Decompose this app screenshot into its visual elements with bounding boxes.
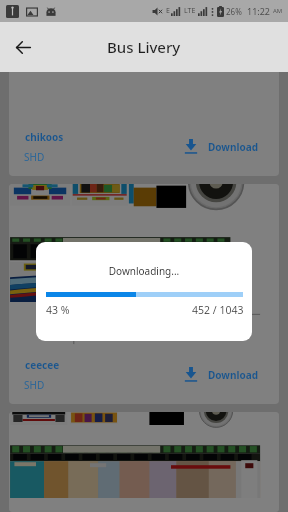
staticText: Downloading... [36, 264, 252, 278]
staticText: chikoos [25, 130, 64, 144]
button[interactable]: Back [0, 24, 46, 70]
staticText: 26% [226, 6, 242, 17]
staticText: 452 / 1043 [192, 303, 244, 317]
staticText: 43 % [46, 303, 70, 317]
button[interactable]: ceecee [9, 184, 279, 404]
staticText: 11:22 [247, 5, 271, 17]
button[interactable]: Download [184, 367, 258, 382]
staticText: Download [208, 368, 258, 382]
staticText: ceecee [25, 358, 60, 372]
button[interactable]: chikoos [9, 72, 279, 176]
staticText: LTE [184, 6, 196, 16]
staticText: Download [208, 140, 258, 154]
staticText: SHD [24, 150, 45, 164]
staticText: AM [273, 7, 283, 15]
button[interactable]: Download [184, 139, 258, 154]
staticText: SHD [24, 378, 45, 392]
button[interactable]: dd [9, 412, 279, 512]
staticText: Bus Livery [107, 37, 181, 57]
staticText: E [166, 6, 170, 16]
